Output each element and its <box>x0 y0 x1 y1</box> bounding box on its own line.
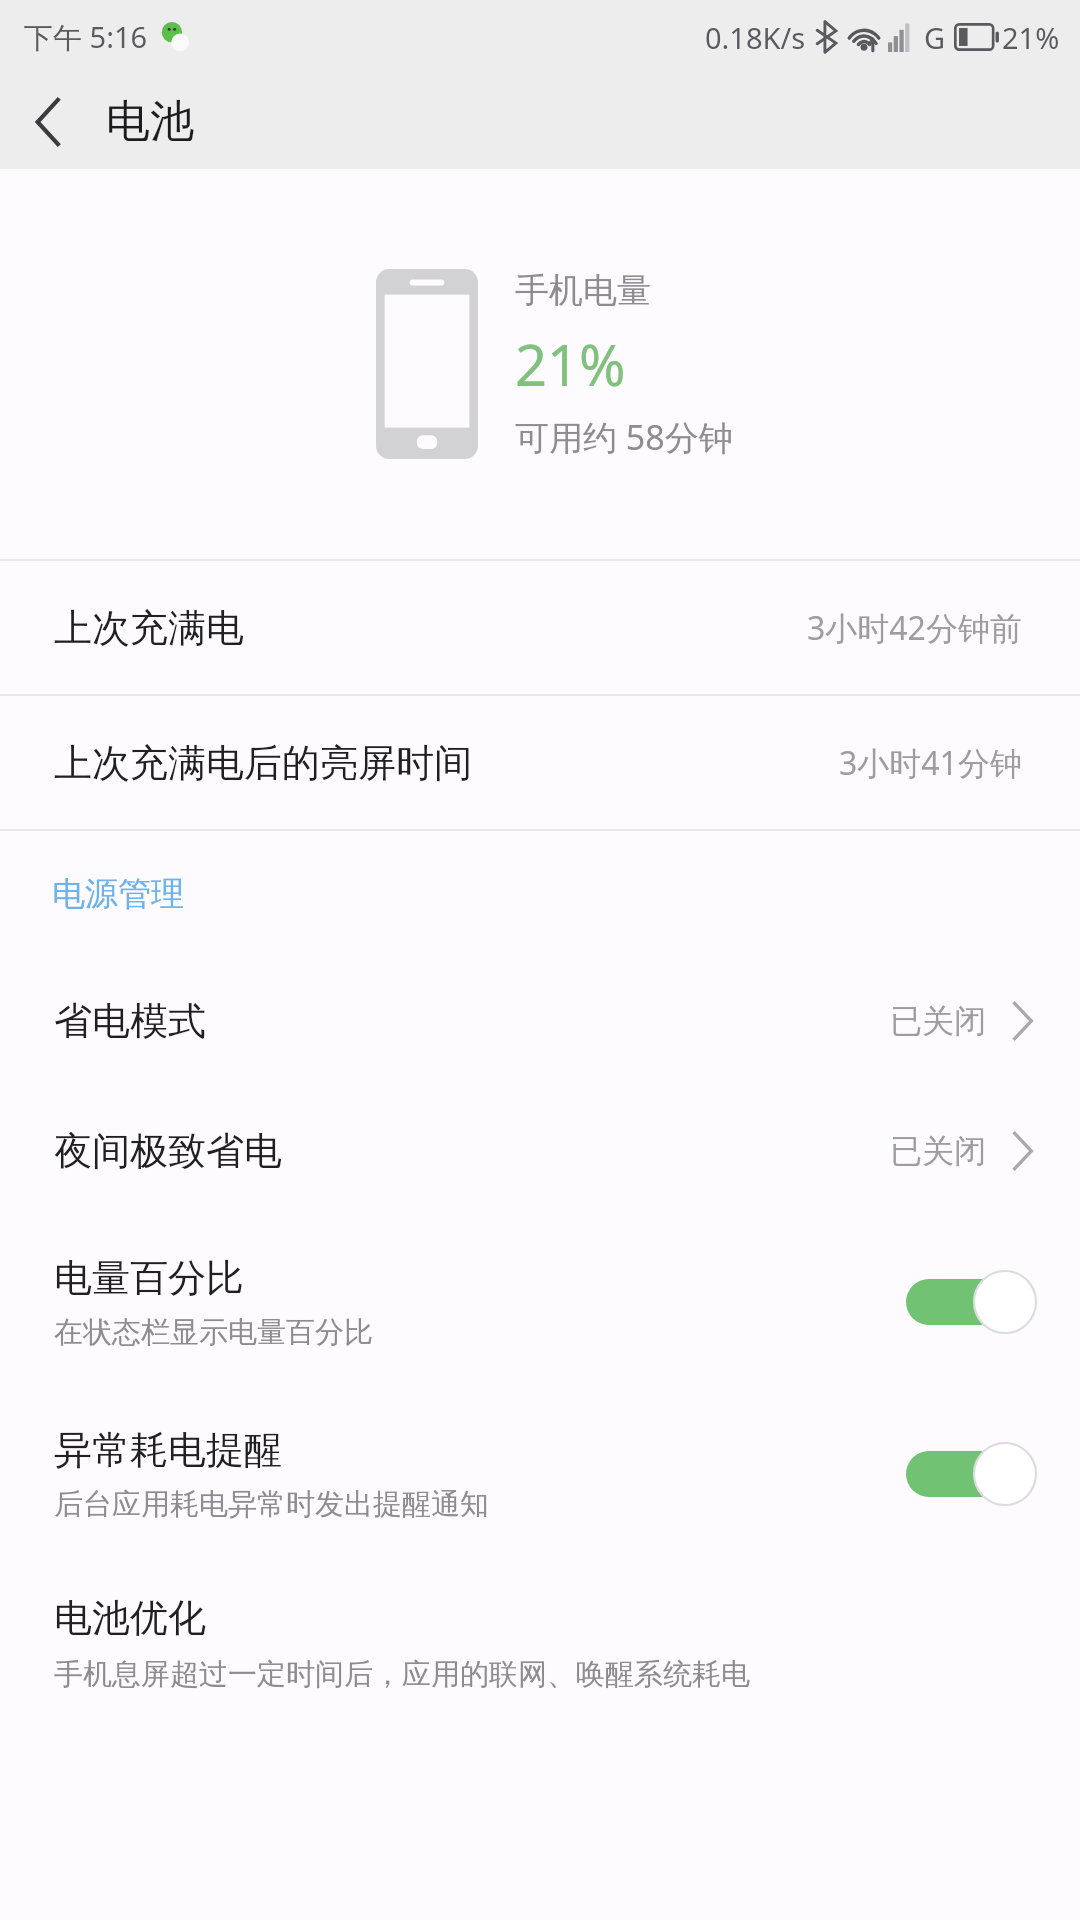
button[interactable]: 上次充满电 <box>0 561 1080 694</box>
staticText: 夜间极致省电 <box>54 1127 282 1175</box>
staticText: 电池优化 <box>54 1594 206 1642</box>
staticText: 0.18K/s <box>705 18 806 57</box>
staticText: 电量百分比 <box>54 1254 244 1302</box>
staticText: 在状态栏显示电量百分比 <box>54 1314 373 1351</box>
button[interactable]: Back <box>0 74 96 169</box>
staticText: 后台应用耗电异常时发出提醒通知 <box>54 1486 489 1523</box>
staticText: 上次充满电后的亮屏时间 <box>54 739 472 787</box>
staticText: G <box>924 18 946 57</box>
staticText: 已关闭 <box>890 1131 986 1171</box>
button[interactable]: 夜间极致省电 <box>0 1086 1080 1216</box>
button[interactable]: 异常耗电提醒 <box>0 1388 1080 1560</box>
staticText: 手机电量 <box>515 269 651 312</box>
staticText: 手机息屏超过一定时间后，应用的联网、唤醒系统耗电 <box>54 1656 750 1693</box>
button[interactable]: 电池优化 <box>0 1560 1080 1693</box>
button[interactable]: 上次充满电后的亮屏时间 <box>0 696 1080 829</box>
staticText: 电池 <box>106 94 194 149</box>
button[interactable]: Toggle <box>906 1443 1036 1505</box>
staticText: 上次充满电 <box>54 604 244 652</box>
button[interactable]: Toggle <box>906 1271 1036 1333</box>
staticText: 可用约 58分钟 <box>515 414 733 460</box>
staticText: 已关闭 <box>890 1001 986 1041</box>
button[interactable]: 省电模式 <box>0 956 1080 1086</box>
staticText: 3小时41分钟 <box>839 741 1022 785</box>
button[interactable]: 电量百分比 <box>0 1216 1080 1388</box>
staticText: 电源管理 <box>52 873 184 915</box>
staticText: 下午 5:16 <box>24 17 148 57</box>
staticText: 21% <box>515 326 626 402</box>
staticText: 异常耗电提醒 <box>54 1426 282 1474</box>
staticText: 省电模式 <box>54 997 206 1045</box>
staticText: 21% <box>1002 18 1060 57</box>
staticText: 3小时42分钟前 <box>807 606 1022 650</box>
